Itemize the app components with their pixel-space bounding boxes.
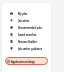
staticText: My jobs xyxy=(18,12,28,15)
staticText: My jobs xyxy=(18,12,28,15)
staticText: Resume Builder xyxy=(18,40,37,43)
button[interactable]: My jobs xyxy=(2,10,51,17)
staticText: Application settings xyxy=(11,60,35,63)
staticText: Saved searches xyxy=(18,33,37,36)
button[interactable]: Application settings xyxy=(5,57,48,65)
staticText: Job alerts xyxy=(18,19,30,22)
staticText: Job seeker guidance xyxy=(18,47,43,50)
staticText: Job alerts xyxy=(18,19,30,22)
staticText: Recommended jobs xyxy=(18,26,42,29)
button[interactable]: Saved searches xyxy=(2,31,51,38)
staticText: Application settings xyxy=(11,60,35,63)
button[interactable]: Recommended jobs xyxy=(2,24,51,31)
staticText: Saved searches xyxy=(18,33,37,36)
staticText: Recommended jobs xyxy=(18,26,42,29)
staticText: Job seeker guidance xyxy=(18,47,43,50)
button[interactable]: Resume Builder xyxy=(2,38,51,45)
button[interactable]: Job seeker guidance xyxy=(2,45,51,52)
button[interactable]: Job alerts xyxy=(2,17,51,24)
staticText: Resume Builder xyxy=(18,40,37,43)
